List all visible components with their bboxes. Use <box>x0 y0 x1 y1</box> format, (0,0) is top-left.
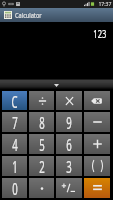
staticText: 7 <box>12 112 18 132</box>
button[interactable]: 3 <box>56 156 82 176</box>
button[interactable]: Plus minus <box>56 178 82 198</box>
button[interactable]: Multiply <box>56 91 82 110</box>
button[interactable]: 1 <box>2 156 27 176</box>
staticText: 4 <box>12 134 18 154</box>
staticText: 2 <box>39 156 45 176</box>
staticText: 0 <box>12 178 18 198</box>
staticText: 17:37 <box>98 0 112 8</box>
button[interactable]: Delete <box>84 91 110 110</box>
button[interactable]: 9 <box>56 112 82 132</box>
button[interactable]: 5 <box>29 134 54 154</box>
button[interactable]: 4 <box>2 134 27 154</box>
button[interactable]: 7 <box>2 112 27 132</box>
button[interactable]: 0 <box>2 178 27 198</box>
staticText: 3 <box>66 156 72 176</box>
staticText: 8 <box>39 112 45 132</box>
button[interactable]: 6 <box>56 134 82 154</box>
staticText: 6 <box>66 134 72 154</box>
button[interactable]: Parentheses <box>84 156 110 176</box>
button[interactable]: C <box>2 91 27 110</box>
button[interactable]: 8 <box>29 112 54 132</box>
button[interactable]: Equals <box>84 178 110 198</box>
button[interactable]: Plus <box>84 134 110 154</box>
button[interactable]: 2 <box>29 156 54 176</box>
staticText: C <box>11 91 18 110</box>
staticText: Calculator <box>15 11 42 21</box>
staticText: 9 <box>66 112 72 132</box>
button[interactable]: Decimal point <box>29 178 54 198</box>
staticText: 1 <box>12 156 18 176</box>
staticText: 123 <box>93 27 107 41</box>
button[interactable]: Divide <box>29 91 54 110</box>
staticText: 5 <box>39 134 45 154</box>
button[interactable]: Minus <box>84 112 110 132</box>
